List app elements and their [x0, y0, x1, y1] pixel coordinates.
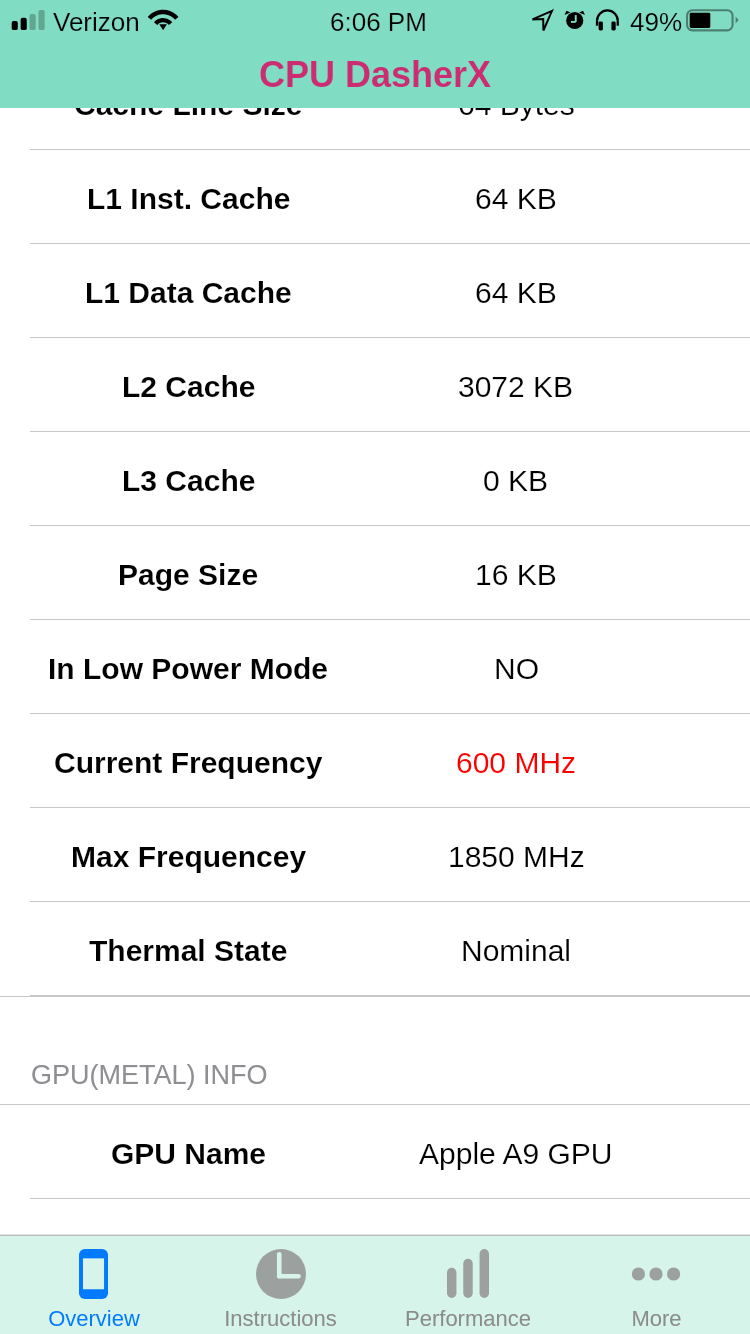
button[interactable]: Thermal State [0, 902, 750, 996]
staticText: GPU(METAL) INFO [31, 1060, 268, 1090]
staticText: 64 Bytes [458, 88, 575, 122]
staticText: GPU Name [111, 1137, 267, 1171]
staticText: L3 Cache [122, 464, 256, 498]
staticText: Page Size [118, 558, 259, 592]
staticText: Thermal State [89, 934, 288, 968]
staticText: Apple A9 GPU [419, 1137, 613, 1171]
staticText: 600 MHz [456, 746, 577, 780]
staticText: 16 KB [475, 558, 557, 592]
staticText: 49% [630, 7, 683, 36]
staticText: 3072 KB [458, 370, 574, 404]
staticText: Nominal [461, 934, 572, 968]
button[interactable]: Current Frequency [0, 714, 750, 808]
staticText: 64 KB [475, 276, 557, 310]
staticText: L1 Data Cache [85, 276, 292, 310]
staticText: Verizon [53, 7, 140, 36]
button[interactable]: In Low Power Mode [0, 620, 750, 714]
button[interactable]: L1 Data Cache [0, 244, 750, 338]
button[interactable]: Max Frequencey [0, 808, 750, 902]
button[interactable]: Instructions [187, 1236, 374, 1334]
button[interactable]: L1 Inst. Cache [0, 150, 750, 244]
staticText: CPU DasherX [259, 54, 492, 94]
staticText: 6:06 PM [330, 7, 427, 36]
staticText: Instructions [224, 1306, 337, 1331]
staticText: 64 KB [475, 182, 557, 216]
staticText: 0 KB [483, 464, 549, 498]
button[interactable]: Overview [0, 1236, 187, 1334]
staticText: In Low Power Mode [48, 652, 329, 686]
staticText: Overview [48, 1306, 140, 1331]
staticText: L1 Inst. Cache [87, 182, 291, 216]
staticText: Cache Line Size [74, 88, 303, 122]
staticText: Current Frequency [54, 746, 323, 780]
button[interactable]: Cache Line Size [0, 56, 750, 150]
button[interactable]: GPU Name [0, 1105, 750, 1199]
button[interactable]: L3 Cache [0, 432, 750, 526]
staticText: Performance [405, 1306, 531, 1331]
staticText: Max Frequencey [71, 840, 307, 874]
staticText: 1850 MHz [448, 840, 585, 874]
button[interactable]: Page Size [0, 526, 750, 620]
button[interactable]: L2 Cache [0, 338, 750, 432]
staticText: L2 Cache [122, 370, 256, 404]
staticText: More [631, 1306, 682, 1331]
button[interactable]: Performance [374, 1236, 562, 1334]
staticText: NO [494, 652, 539, 686]
button[interactable]: More [562, 1236, 750, 1334]
